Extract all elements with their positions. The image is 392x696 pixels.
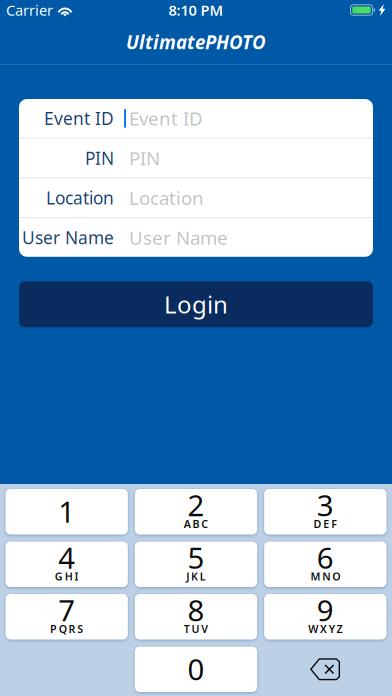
- button[interactable]: 5: [135, 541, 257, 587]
- staticText: T: [184, 622, 190, 636]
- staticText: G: [55, 569, 63, 583]
- staticText: 0: [187, 649, 204, 688]
- staticText: D: [313, 517, 321, 531]
- staticText: User Name: [22, 226, 114, 249]
- button[interactable]: 2: [135, 489, 257, 534]
- staticText: Location: [129, 185, 204, 210]
- staticText: C: [201, 517, 208, 531]
- button[interactable]: User Name: [19, 218, 373, 257]
- staticText: UltimatePHOTO: [126, 30, 266, 54]
- staticText: Q: [59, 622, 67, 636]
- staticText: S: [77, 622, 83, 636]
- staticText: Event ID: [129, 106, 203, 131]
- staticText: J: [186, 569, 189, 583]
- staticText: 7: [58, 590, 75, 629]
- staticText: N: [322, 569, 330, 583]
- button[interactable]: 0: [135, 646, 257, 692]
- staticText: K: [191, 569, 198, 583]
- staticText: U: [191, 622, 199, 636]
- staticText: H: [65, 569, 73, 583]
- button[interactable]: 3: [264, 489, 386, 534]
- button[interactable]: Event ID: [19, 99, 373, 138]
- button[interactable]: 1: [5, 489, 128, 534]
- staticText: V: [201, 622, 208, 636]
- staticText: W: [308, 622, 318, 636]
- staticText: O: [332, 569, 340, 583]
- staticText: Y: [329, 622, 335, 636]
- staticText: 2: [187, 485, 204, 524]
- button[interactable]: 4: [5, 541, 128, 587]
- staticText: Login: [164, 288, 228, 320]
- staticText: P: [50, 622, 57, 636]
- staticText: I: [74, 569, 78, 583]
- staticText: PIN: [129, 146, 160, 170]
- staticText: Z: [336, 622, 342, 636]
- staticText: Location: [46, 186, 114, 209]
- staticText: F: [331, 517, 337, 531]
- staticText: 5: [187, 538, 204, 577]
- staticText: 8: [187, 590, 204, 629]
- staticText: R: [69, 622, 76, 636]
- button[interactable]: Login: [19, 281, 373, 327]
- button[interactable]: 6: [264, 541, 386, 587]
- button[interactable]: Delete: [264, 646, 386, 692]
- staticText: 9: [317, 590, 334, 629]
- button[interactable]: 7: [5, 594, 128, 639]
- staticText: E: [323, 517, 329, 531]
- staticText: M: [310, 569, 320, 583]
- staticText: User Name: [129, 225, 228, 250]
- staticText: 4: [58, 538, 75, 577]
- staticText: B: [192, 517, 199, 531]
- button[interactable]: Location: [19, 178, 373, 217]
- staticText: PIN: [85, 146, 114, 169]
- staticText: 1: [58, 492, 75, 531]
- staticText: X: [320, 622, 327, 636]
- staticText: A: [184, 517, 191, 531]
- button[interactable]: 8: [135, 594, 257, 639]
- staticText: 3: [317, 485, 334, 524]
- staticText: Carrier: [6, 0, 53, 20]
- staticText: 8:10 PM: [168, 0, 223, 20]
- staticText: L: [200, 569, 206, 583]
- button[interactable]: 9: [264, 594, 386, 639]
- button[interactable]: PIN: [19, 139, 373, 177]
- staticText: Event ID: [44, 107, 114, 130]
- staticText: 6: [317, 538, 334, 577]
